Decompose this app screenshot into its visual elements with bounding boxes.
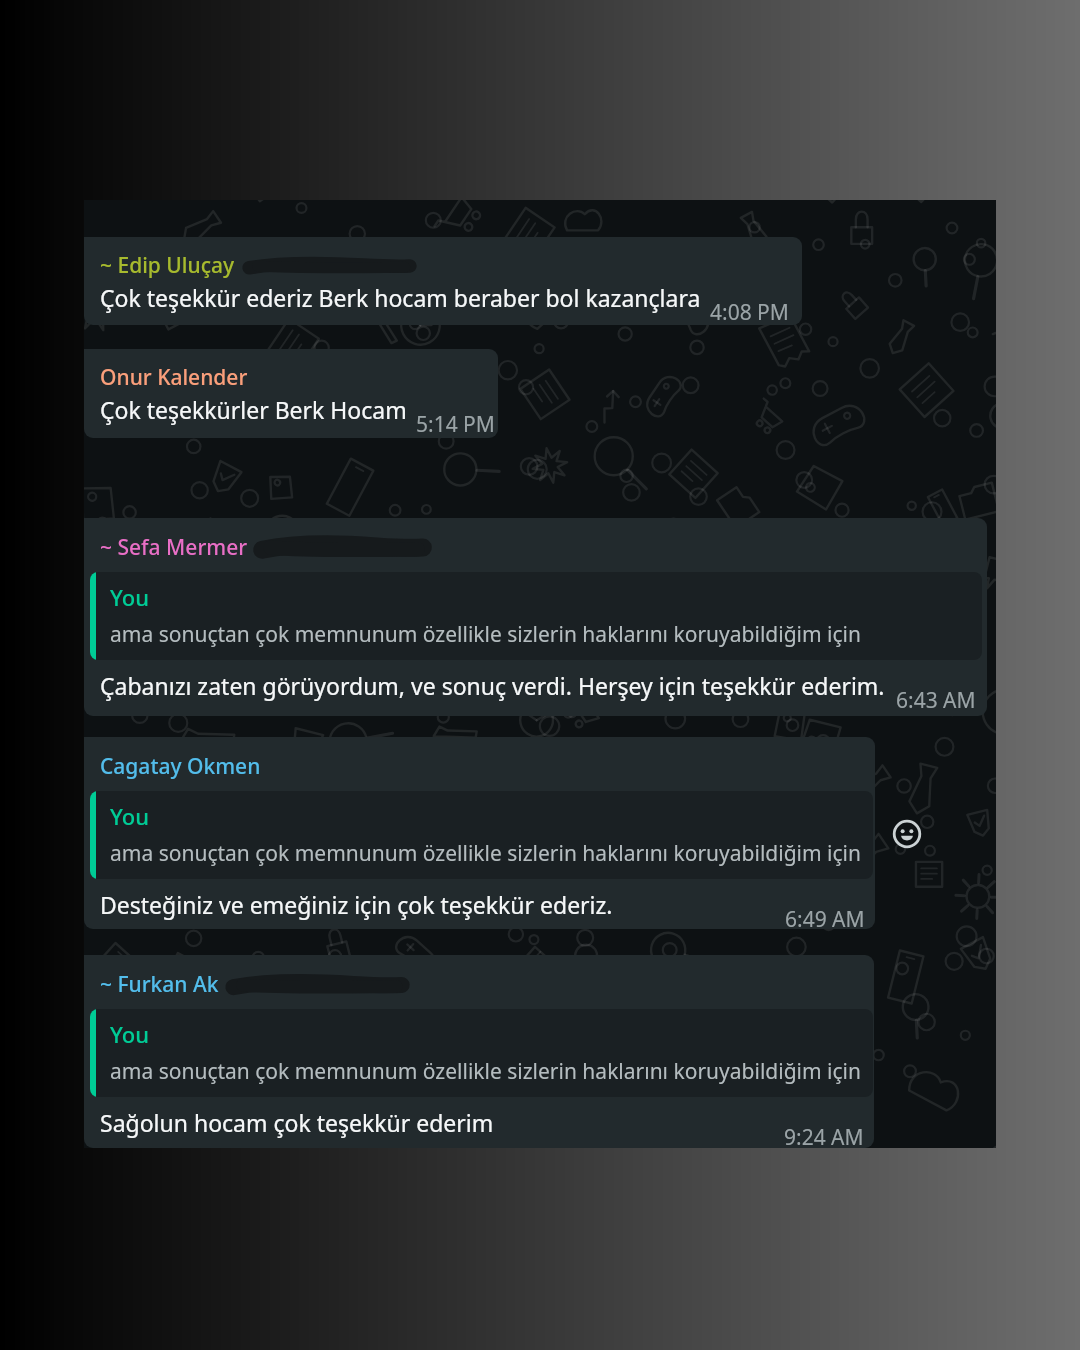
button[interactable]: ~ Sefa Mermer: [84, 518, 987, 716]
staticText: You: [110, 801, 149, 831]
staticText: Çabanızı zaten görüyordum, ve sonuç verd…: [100, 670, 885, 701]
button[interactable]: Cagatay Okmen: [100, 752, 261, 781]
staticText: 6:43 AM: [896, 686, 976, 715]
staticText: 5:14 PM: [416, 410, 495, 438]
staticText: Çok teşekkürler Berk Hocam: [100, 394, 407, 425]
staticText: Sağolun hocam çok teşekkür ederim: [100, 1107, 494, 1138]
staticText: ama sonuçtan çok memnunum özellikle sizl…: [110, 839, 861, 868]
button[interactable]: ~ Furkan Ak: [84, 955, 874, 1148]
staticText: You: [110, 1019, 149, 1049]
staticText: ama sonuçtan çok memnunum özellikle sizl…: [110, 1057, 861, 1086]
staticText: Desteğiniz ve emeğiniz için çok teşekkür…: [100, 889, 613, 920]
staticText: Onur Kalender: [100, 363, 248, 392]
staticText: ~ Sefa Mermer: [100, 533, 248, 562]
staticText: 6:49 AM: [785, 905, 865, 929]
button[interactable]: Onur Kalender: [100, 363, 248, 392]
staticText: Cagatay Okmen: [100, 752, 261, 781]
button[interactable]: Cagatay Okmen: [84, 737, 875, 929]
button[interactable]: You: [90, 791, 873, 879]
button[interactable]: Onur Kalender: [84, 349, 498, 438]
button[interactable]: ~ Furkan Ak: [100, 970, 407, 999]
button[interactable]: ~ Edip Uluçay: [84, 237, 802, 325]
button[interactable]: React with emoji: [885, 812, 929, 856]
button[interactable]: You: [90, 572, 982, 660]
staticText: You: [110, 582, 149, 612]
staticText: ~ Edip Uluçay: [100, 251, 235, 280]
button[interactable]: ~ Edip Uluçay: [100, 251, 415, 280]
staticText: Çok teşekkür ederiz Berk hocam beraber b…: [100, 282, 701, 313]
staticText: ~ Furkan Ak: [100, 970, 219, 999]
button[interactable]: You: [90, 1009, 873, 1097]
button[interactable]: ~ Sefa Mermer: [100, 533, 428, 562]
staticText: 9:24 AM: [784, 1123, 864, 1148]
staticText: 4:08 PM: [710, 298, 789, 325]
staticText: ama sonuçtan çok memnunum özellikle sizl…: [110, 620, 861, 649]
